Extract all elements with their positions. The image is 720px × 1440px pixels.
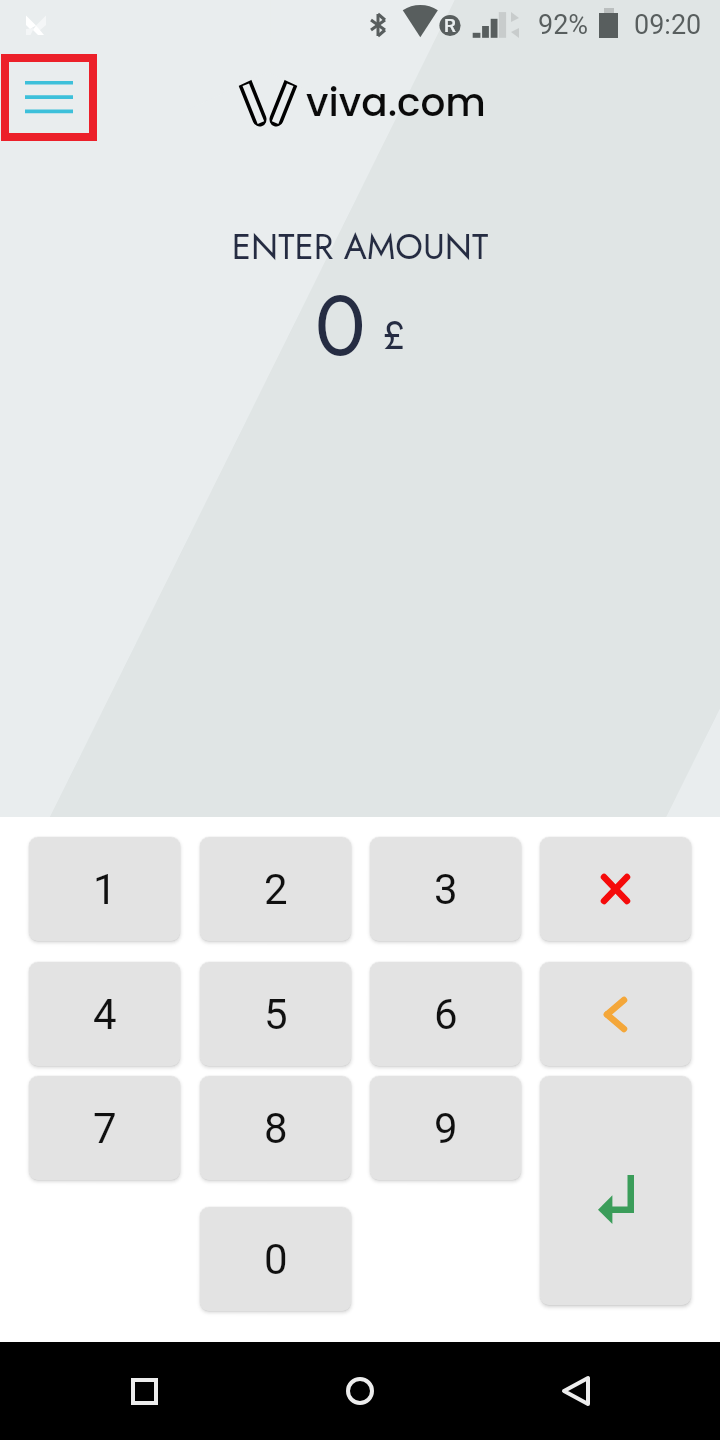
- button[interactable]: 9: [370, 1076, 521, 1180]
- button[interactable]: Home: [324, 1342, 396, 1440]
- button[interactable]: 6: [370, 962, 521, 1066]
- button[interactable]: 1: [29, 837, 180, 941]
- staticText: 2: [264, 865, 288, 914]
- button[interactable]: 2: [200, 837, 351, 941]
- staticText: 0: [315, 265, 366, 386]
- button[interactable]: 5: [200, 962, 351, 1066]
- staticText: 1: [93, 865, 117, 914]
- button[interactable]: 8: [200, 1076, 351, 1180]
- staticText: ENTER AMOUNT: [0, 222, 720, 273]
- staticText: 8: [264, 1104, 288, 1153]
- staticText: 5: [264, 990, 288, 1039]
- button[interactable]: 3: [370, 837, 521, 941]
- staticText: 7: [93, 1104, 117, 1153]
- staticText: 0: [264, 1235, 288, 1284]
- staticText: 92%: [538, 9, 589, 41]
- staticText: 09:20: [634, 9, 702, 41]
- button[interactable]: 7: [29, 1076, 180, 1180]
- staticText: 9: [434, 1104, 458, 1153]
- staticText: 3: [434, 865, 458, 914]
- button[interactable]: Enter: [540, 1076, 691, 1305]
- button[interactable]: Recent apps: [108, 1342, 180, 1440]
- button[interactable]: 4: [29, 962, 180, 1066]
- button[interactable]: Back: [540, 1342, 612, 1440]
- button[interactable]: 0: [200, 1207, 351, 1311]
- staticText: R: [444, 14, 456, 36]
- button[interactable]: Backspace: [540, 962, 691, 1066]
- staticText: 6: [434, 990, 458, 1039]
- staticText: £: [382, 306, 406, 364]
- staticText: 4: [93, 990, 117, 1039]
- button[interactable]: Cancel: [540, 837, 691, 941]
- button[interactable]: Menu: [1, 54, 97, 141]
- staticText: viva.com: [306, 75, 486, 130]
